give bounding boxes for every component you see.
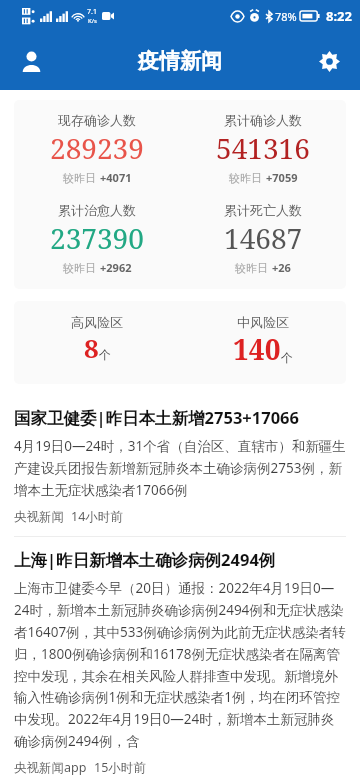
- staticText: 个: [99, 347, 111, 362]
- staticText: 上海|昨日新增本土确诊病例2494例: [14, 548, 276, 571]
- staticText: 14687: [224, 219, 303, 257]
- staticText: 8:22: [326, 7, 352, 25]
- staticText: 78%: [275, 9, 297, 24]
- staticText: 个: [281, 350, 293, 365]
- staticText: 疫情新闻: [138, 48, 222, 74]
- staticText: 541316: [216, 129, 310, 167]
- staticText: 较昨日: [63, 261, 96, 275]
- staticText: 累计死亡人数: [224, 202, 302, 218]
- staticText: +4071: [100, 170, 132, 185]
- staticText: 现存确诊人数: [58, 112, 136, 128]
- staticText: 较昨日: [229, 171, 262, 185]
- staticText: 累计治愈人数: [58, 202, 136, 218]
- staticText: K/s: [88, 17, 97, 25]
- staticText: 较昨日: [235, 261, 268, 275]
- staticText: 4月19日0—24时，31个省（自治区、直辖市）和新疆生产建设兵团报告新增新冠肺…: [14, 437, 346, 499]
- button[interactable]: 现存确诊人数: [14, 100, 346, 289]
- staticText: 累计确诊人数: [224, 112, 302, 128]
- button[interactable]: 上海|昨日新增本土确诊病例2494例: [0, 537, 360, 782]
- button[interactable]: 国家卫健委|昨日本土新增2753+17066: [0, 395, 360, 536]
- staticText: 中风险区: [237, 314, 289, 330]
- staticText: 央视新闻: [14, 509, 64, 525]
- staticText: 7.1: [87, 7, 97, 17]
- staticText: 8: [84, 330, 99, 365]
- staticText: 289239: [50, 129, 144, 167]
- staticText: +26: [272, 260, 291, 275]
- staticText: 140: [233, 330, 281, 368]
- staticText: 237390: [50, 219, 144, 257]
- staticText: 14小时前: [71, 508, 123, 525]
- staticText: 国家卫健委|昨日本土新增2753+17066: [14, 406, 299, 429]
- button[interactable]: Settings: [306, 38, 352, 84]
- staticText: +7059: [266, 170, 298, 185]
- staticText: 较昨日: [63, 171, 96, 185]
- staticText: 央视新闻app: [14, 759, 87, 776]
- staticText: 15小时前: [94, 759, 146, 776]
- staticText: 上海市卫健委今早（20日）通报：2022年4月19日0—24时，新增本土新冠肺炎…: [14, 579, 346, 750]
- staticText: 高风险区: [71, 314, 123, 330]
- staticText: +2962: [100, 260, 132, 275]
- button[interactable]: 高风险区: [14, 301, 346, 384]
- button[interactable]: Profile: [8, 38, 54, 84]
